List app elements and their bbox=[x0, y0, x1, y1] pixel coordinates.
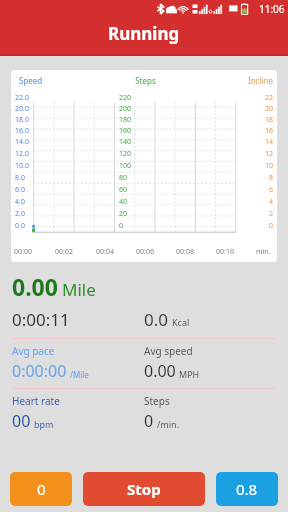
staticText: 16.0 bbox=[15, 126, 101, 136]
staticText: 0.00 bbox=[12, 271, 58, 302]
staticText: 22.0 bbox=[15, 93, 101, 103]
staticText: 120 bbox=[119, 149, 132, 159]
staticText: 200 bbox=[119, 104, 132, 114]
staticText: /min. bbox=[157, 418, 180, 430]
staticText: 00:08 bbox=[176, 247, 216, 257]
staticText: Steps bbox=[103, 75, 188, 86]
staticText: Speed bbox=[19, 75, 103, 86]
staticText: min. bbox=[256, 247, 274, 257]
staticText: Incline bbox=[188, 75, 273, 86]
staticText: 220 bbox=[119, 93, 132, 103]
staticText: 0.00 bbox=[144, 360, 176, 382]
staticText: 00:04 bbox=[96, 247, 136, 257]
staticText: 00 bbox=[12, 410, 31, 432]
button[interactable]: 0.8 bbox=[216, 472, 278, 506]
staticText: 80 bbox=[119, 173, 128, 183]
staticText: 18 bbox=[187, 115, 273, 125]
staticText: 00:06 bbox=[136, 247, 176, 257]
staticText: 12 bbox=[187, 149, 273, 159]
staticText: 0.8 bbox=[236, 479, 258, 499]
staticText: 2 bbox=[187, 209, 273, 219]
staticText: 0 bbox=[144, 410, 154, 432]
staticText: 140 bbox=[119, 137, 132, 147]
staticText: 0 bbox=[37, 479, 46, 499]
staticText: 10.0 bbox=[15, 161, 101, 171]
button[interactable]: Stop bbox=[83, 472, 205, 506]
staticText: Avg speed bbox=[144, 344, 193, 358]
staticText: 20.0 bbox=[15, 104, 101, 114]
staticText: 12.0 bbox=[15, 149, 101, 159]
staticText: 14 bbox=[187, 137, 273, 147]
staticText: Avg pace bbox=[12, 344, 55, 358]
staticText: 22 bbox=[187, 93, 273, 103]
staticText: 14.0 bbox=[15, 137, 101, 147]
staticText: MPH bbox=[179, 368, 200, 380]
staticText: 40 bbox=[119, 197, 128, 207]
staticText: 0 bbox=[119, 221, 124, 231]
staticText: 2.0 bbox=[15, 209, 101, 219]
staticText: 160 bbox=[119, 126, 132, 136]
staticText: 4.0 bbox=[15, 197, 101, 207]
staticText: 16 bbox=[187, 126, 273, 136]
staticText: 00:10 bbox=[216, 247, 256, 257]
staticText: 0.0 bbox=[15, 221, 101, 231]
staticText: /Mile bbox=[70, 369, 89, 380]
staticText: 180 bbox=[119, 115, 132, 125]
staticText: Running bbox=[108, 22, 180, 45]
staticText: 18.0 bbox=[15, 115, 101, 125]
staticText: 0.0 bbox=[144, 308, 169, 331]
staticText: Steps bbox=[144, 394, 170, 408]
staticText: 8.0 bbox=[15, 173, 101, 183]
staticText: 8 bbox=[187, 173, 273, 183]
staticText: 10 bbox=[187, 161, 273, 171]
staticText: 11:06 bbox=[259, 2, 285, 16]
staticText: 0 bbox=[187, 221, 273, 231]
staticText: Kcal bbox=[172, 316, 190, 328]
staticText: Stop bbox=[127, 479, 161, 499]
staticText: 6.0 bbox=[15, 185, 101, 195]
staticText: 20 bbox=[119, 209, 128, 219]
staticText: 00:02 bbox=[55, 247, 96, 257]
staticText: 6 bbox=[187, 185, 273, 195]
staticText: 0:00:11 bbox=[12, 308, 70, 331]
staticText: Mile bbox=[62, 278, 96, 301]
staticText: Heart rate bbox=[12, 394, 60, 408]
staticText: 20 bbox=[187, 104, 273, 114]
staticText: 00:00 bbox=[14, 247, 55, 257]
button[interactable]: 0 bbox=[10, 472, 72, 506]
staticText: 60 bbox=[119, 185, 128, 195]
staticText: 100 bbox=[119, 161, 132, 171]
staticText: bpm bbox=[34, 418, 54, 430]
staticText: 4 bbox=[187, 197, 273, 207]
staticText: 0:00:00 bbox=[12, 360, 67, 382]
